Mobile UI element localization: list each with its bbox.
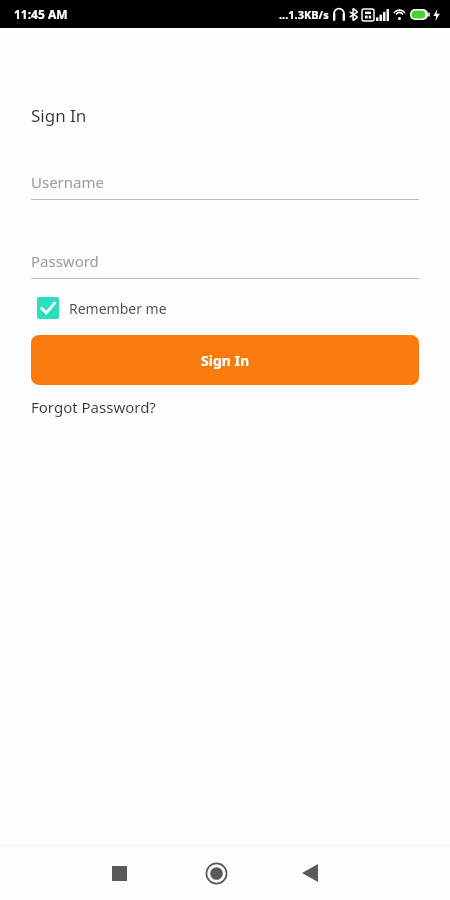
button[interactable]: Home bbox=[195, 852, 237, 894]
staticText: ...1.3KB/s bbox=[279, 7, 329, 22]
staticText: 11:45 AM bbox=[14, 6, 68, 22]
staticText: Username bbox=[31, 172, 104, 192]
button[interactable]: Recent apps bbox=[98, 852, 140, 894]
staticText: Sign In bbox=[201, 351, 250, 370]
staticText: Remember me bbox=[69, 299, 167, 318]
button[interactable]: Forgot Password? bbox=[31, 397, 156, 417]
button[interactable]: Sign In bbox=[31, 335, 419, 385]
staticText: Sign In bbox=[31, 104, 87, 127]
button[interactable]: Username bbox=[31, 169, 419, 200]
staticText: Password bbox=[31, 251, 99, 271]
button[interactable]: Remember me bbox=[31, 293, 173, 323]
staticText: Forgot Password? bbox=[31, 397, 156, 417]
button[interactable]: Back bbox=[289, 852, 331, 894]
button[interactable]: Password bbox=[31, 248, 419, 279]
